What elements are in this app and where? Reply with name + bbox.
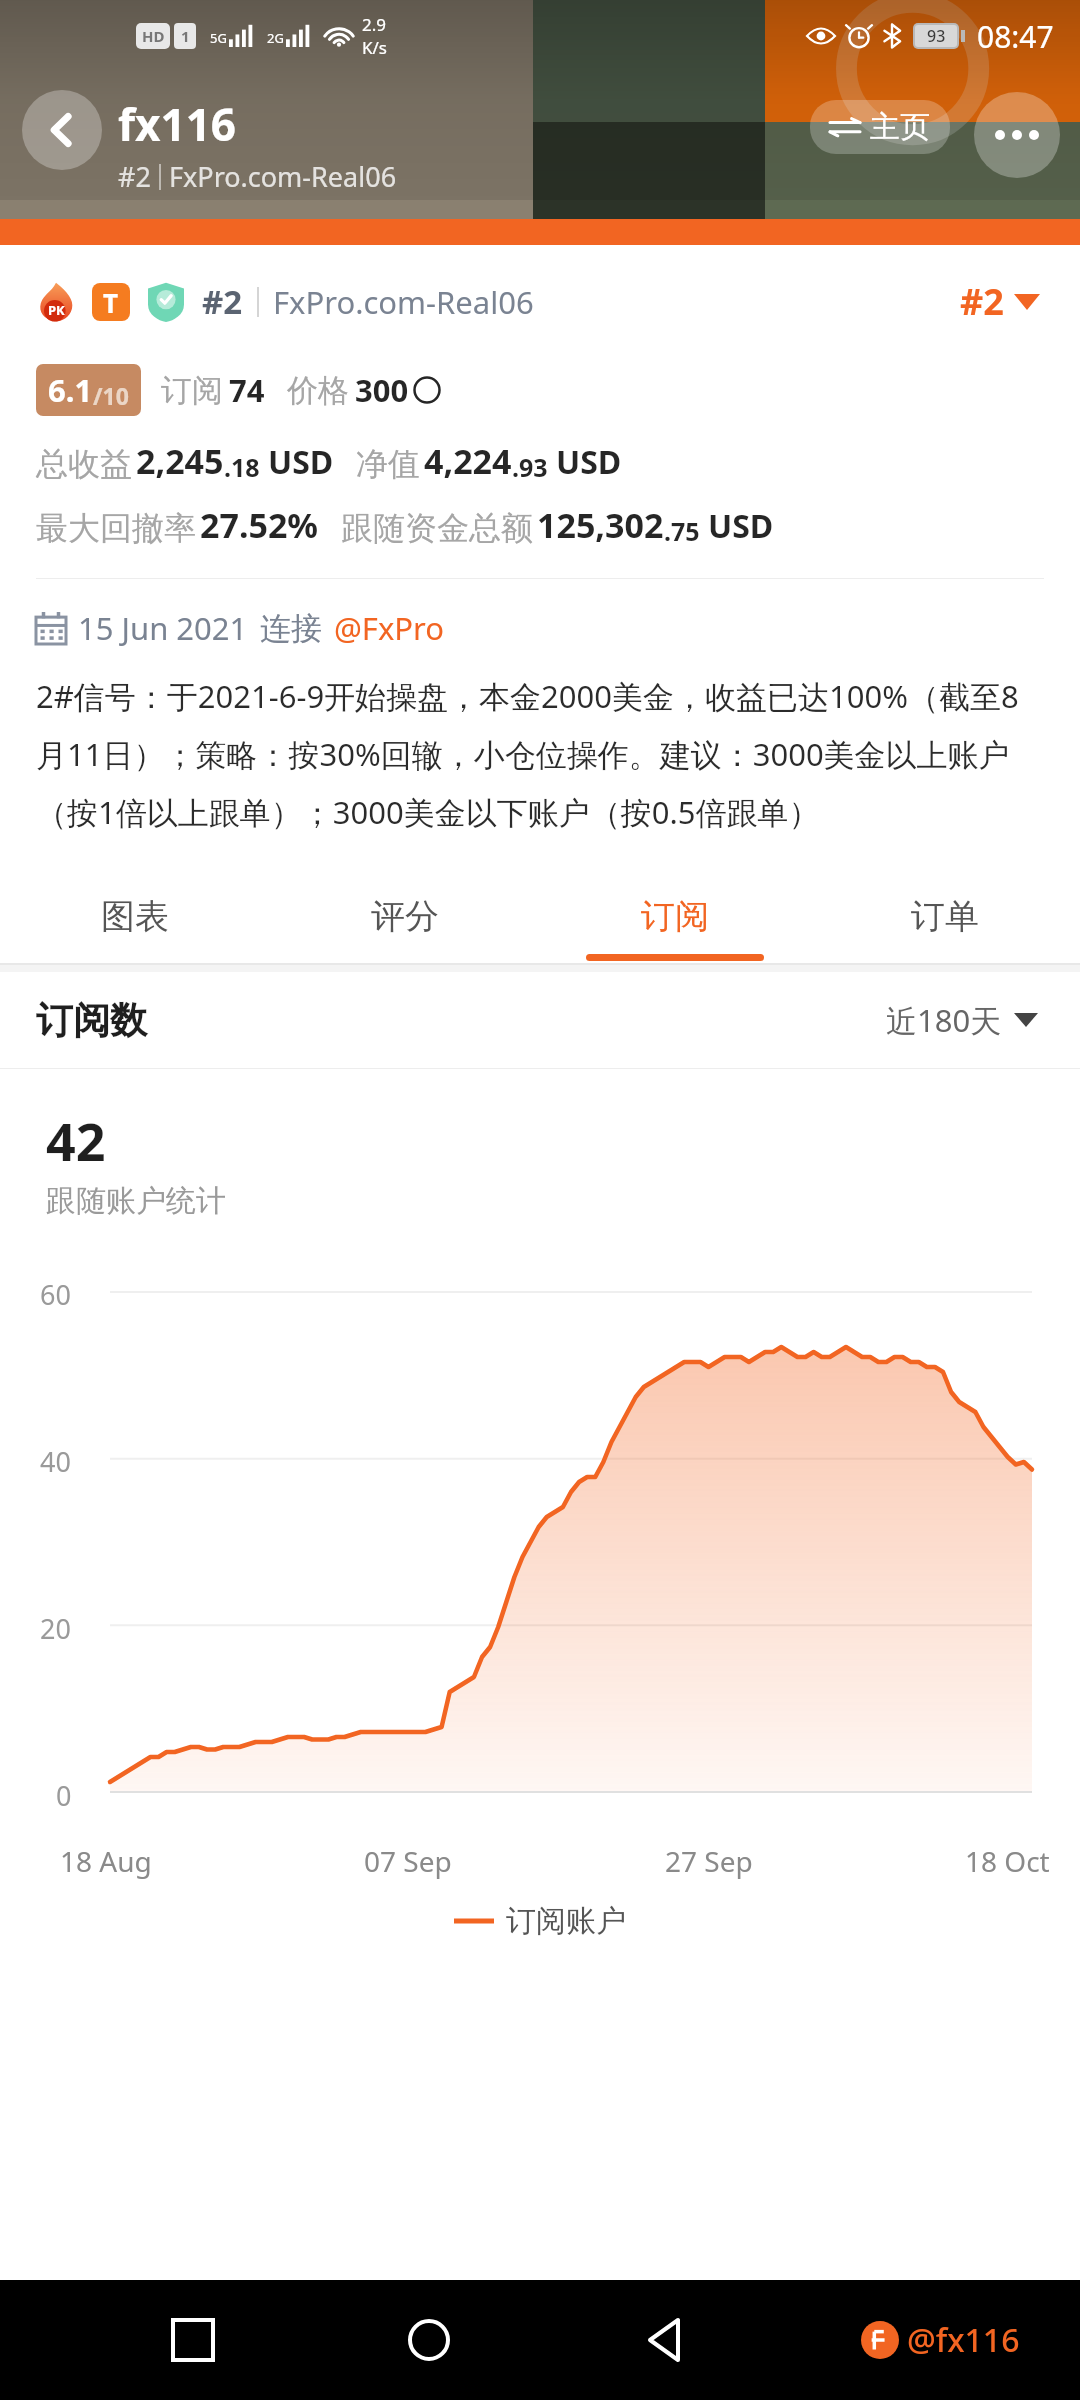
staticText: 60 — [40, 1276, 71, 1313]
staticText: PK — [48, 301, 65, 319]
staticText: 最大回撤率 — [36, 508, 196, 548]
staticText: USD — [556, 440, 622, 484]
staticText: 2#信号：于2021-6-9开始操盘，本金2000美金，收益已达100%（截至8… — [36, 675, 1044, 833]
staticText: 07 Sep — [364, 1842, 452, 1880]
staticText: 订单 — [911, 895, 979, 938]
staticText: USD — [708, 504, 774, 548]
button[interactable]: 订单 — [810, 869, 1080, 963]
staticText: 2.9 — [362, 13, 387, 36]
staticText: 18 Aug — [60, 1842, 152, 1880]
button[interactable]: 评分 — [270, 869, 540, 963]
staticText: 300 — [355, 369, 409, 411]
button[interactable]: 近180天 — [880, 993, 1044, 1047]
staticText: #2 — [118, 158, 151, 195]
staticText: 18 Oct — [965, 1842, 1050, 1880]
staticText: USD — [268, 440, 334, 484]
staticText: 4,224 — [424, 438, 512, 484]
staticText: K/s — [362, 36, 387, 59]
button[interactable]: Recent apps — [151, 2298, 235, 2382]
staticText: 93 — [927, 25, 946, 47]
staticText: 2,245 — [136, 438, 224, 484]
staticText: 40 — [40, 1443, 71, 1480]
staticText: 27 Sep — [665, 1842, 753, 1880]
button[interactable]: Home — [387, 2298, 471, 2382]
staticText: 净值 — [356, 444, 420, 484]
staticText: 6.1 — [48, 369, 93, 411]
staticText: @fx116 — [907, 2318, 1020, 2362]
staticText: 15 Jun 2021 — [78, 607, 248, 649]
staticText: 连接 — [260, 609, 322, 648]
staticText: 1 — [181, 26, 190, 46]
staticText: 评分 — [371, 895, 439, 938]
button[interactable]: Back — [624, 2298, 708, 2382]
staticText: /10 — [93, 380, 129, 411]
button[interactable]: 图表 — [0, 869, 270, 963]
button[interactable]: @FxPro — [334, 607, 445, 649]
staticText: FxPro.com-Real06 — [169, 158, 397, 195]
staticText: 订阅 — [161, 371, 223, 410]
staticText: 27.52% — [200, 502, 319, 548]
staticText: .93 — [512, 450, 548, 484]
button[interactable]: #2 — [956, 273, 1044, 330]
staticText: @FxPro — [334, 607, 445, 649]
staticText: 0 — [56, 1777, 72, 1814]
staticText: 跟随账户统计 — [46, 1182, 226, 1220]
button[interactable]: Back — [22, 90, 102, 170]
button[interactable]: More options — [974, 92, 1060, 178]
staticText: 跟随资金总额 — [341, 508, 533, 548]
staticText: 08:47 — [977, 16, 1054, 57]
staticText: #2 — [202, 279, 243, 324]
staticText: T — [103, 285, 119, 320]
staticText: 总收益 — [36, 444, 132, 484]
staticText: FxPro.com-Real06 — [273, 281, 534, 323]
staticText: 20 — [40, 1610, 71, 1647]
staticText: 5G — [210, 29, 227, 47]
staticText: 42 — [46, 1105, 106, 1176]
staticText: 订阅账户 — [506, 1902, 626, 1940]
staticText: 主页 — [870, 108, 930, 146]
staticText: 74 — [229, 369, 265, 411]
staticText: 图表 — [101, 895, 169, 938]
staticText: .75 — [664, 514, 700, 548]
staticText: 订阅 — [641, 895, 709, 938]
button[interactable]: 订阅 — [540, 869, 810, 963]
staticText: 订阅数 — [36, 997, 147, 1044]
button[interactable]: 主页 — [810, 100, 950, 154]
staticText: 价格 — [287, 371, 349, 410]
staticText: 125,302 — [537, 502, 664, 548]
staticText: HD — [142, 26, 165, 46]
staticText: 近180天 — [886, 999, 1002, 1041]
staticText: .18 — [224, 450, 260, 484]
staticText: #2 — [960, 277, 1004, 326]
staticText: fx116 — [118, 94, 236, 154]
staticText: 2G — [267, 29, 284, 47]
